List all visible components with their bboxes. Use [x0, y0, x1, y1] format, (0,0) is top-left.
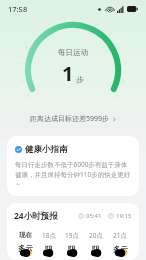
staticText: 步	[76, 75, 84, 84]
staticText: 距离达成目标还差5999步	[30, 114, 110, 124]
staticText: 多云	[18, 244, 33, 253]
staticText: 阴	[45, 245, 53, 253]
button[interactable]: 24小时预报	[7, 203, 139, 260]
staticText: 健康小指南	[25, 144, 68, 155]
staticText: 05:41	[86, 212, 102, 220]
staticText: 24小时预报	[14, 210, 58, 222]
button[interactable]: 健康小指南	[7, 136, 139, 196]
staticText: 18点	[42, 231, 56, 240]
staticText: 1	[62, 60, 74, 87]
staticText: 21点	[113, 231, 127, 240]
button[interactable]: 距离达成目标还差5999步	[24, 112, 123, 126]
staticText: 阴	[68, 245, 76, 253]
staticText: 20点	[89, 231, 103, 240]
staticText: 19:15	[116, 212, 132, 220]
staticText: 19点	[65, 231, 79, 240]
staticText: 阴	[92, 245, 100, 253]
staticText: 17:58	[8, 4, 28, 14]
staticText: 多云	[113, 245, 128, 253]
staticText: 现在	[19, 231, 32, 239]
staticText: 每日行走步数不低于6000步有益于身体健康，并且保持每分钟110步的快走更好～	[15, 160, 131, 188]
staticText: 每日运动	[58, 48, 88, 57]
